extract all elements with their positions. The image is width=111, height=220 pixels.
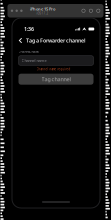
button[interactable]: Rotate device <box>82 9 85 12</box>
staticText: Channel name <box>21 58 46 63</box>
button[interactable]: Back <box>15 36 26 45</box>
button[interactable]: Tag channel <box>18 74 93 85</box>
staticText: Tag channel <box>41 76 70 83</box>
staticText: Channel name required <box>36 67 70 71</box>
staticText: 1:36 <box>24 25 34 33</box>
staticText: Tag a Forwarder channel <box>26 37 86 44</box>
staticText: iOS 17.2 <box>36 12 48 15</box>
staticText: iPhone 15 Pro <box>30 6 55 12</box>
button[interactable]: Screenshot <box>89 9 93 12</box>
staticText: CHANNEL NAME <box>18 50 38 53</box>
button[interactable]: More options <box>97 9 100 12</box>
